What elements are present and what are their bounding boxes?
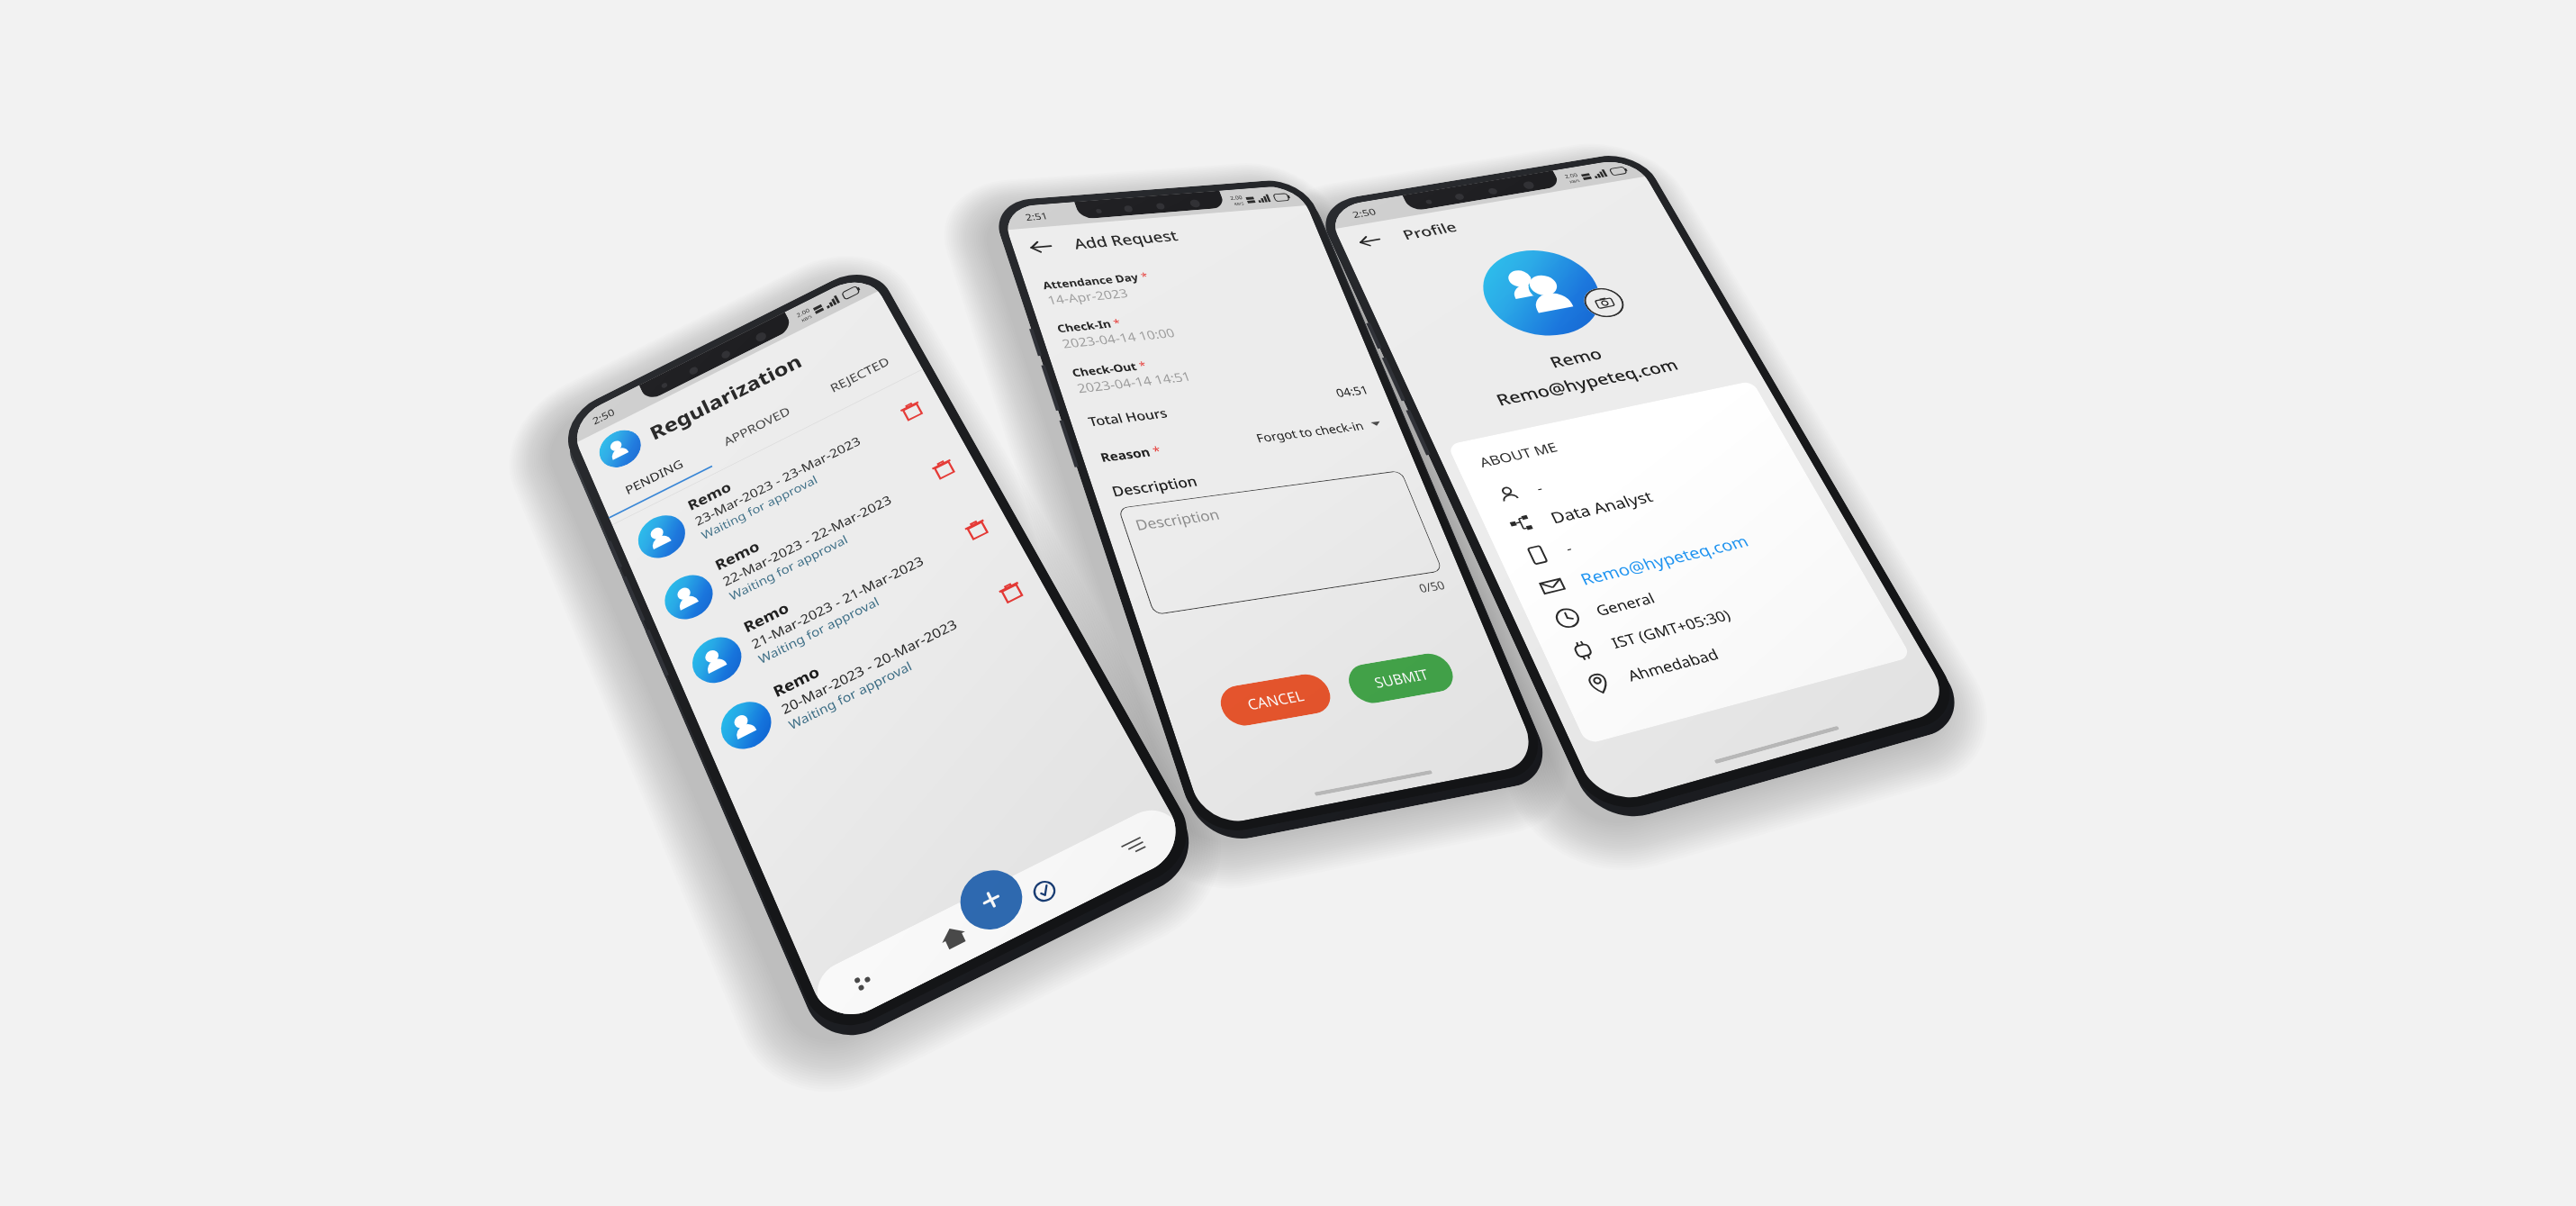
staticText: REJECTED: [827, 353, 892, 396]
staticText: KB/S: [1233, 201, 1245, 207]
button[interactable]: Change photo: [1578, 285, 1630, 320]
staticText: Remo: [1405, 317, 1739, 401]
button[interactable]: Home: [934, 917, 973, 956]
button[interactable]: Add: [951, 860, 1033, 940]
staticText: Check-In: [1055, 316, 1113, 336]
staticText: Waiting for approval: [786, 657, 915, 733]
staticText: Total Hours: [1086, 404, 1170, 430]
button[interactable]: Delete: [926, 453, 962, 485]
staticText: ABOUT ME: [1476, 438, 1561, 471]
staticText: Remo@hypeteq.com: [1416, 340, 1752, 426]
staticText: Profile: [1399, 218, 1460, 244]
staticText: Remo: [770, 661, 823, 702]
staticText: PENDING: [623, 455, 686, 498]
staticText: 23-Mar-2023 - 23-Mar-2023: [692, 433, 863, 529]
button[interactable]: SUBMIT: [1343, 651, 1459, 706]
staticText: Remo: [740, 597, 792, 637]
staticText: Check-Out: [1070, 359, 1139, 380]
staticText: Waiting for approval: [756, 593, 883, 667]
button[interactable]: General: [1547, 534, 1858, 637]
staticText: *: [1108, 315, 1123, 330]
button[interactable]: -: [1489, 420, 1791, 512]
button[interactable]: Attendance Day: [1022, 249, 1340, 313]
button[interactable]: Remo: [693, 547, 1058, 779]
staticText: 04:51: [1333, 382, 1371, 400]
staticText: Ahmedabad: [1624, 644, 1722, 685]
staticText: 2023-04-14 14:51: [1075, 368, 1193, 396]
staticText: Remo: [712, 536, 763, 575]
staticText: KB/S: [801, 314, 813, 324]
staticText: 2:50: [590, 405, 616, 427]
staticText: 2023-04-14 10:00: [1060, 324, 1177, 351]
button[interactable]: Reason: [1080, 410, 1402, 471]
staticText: -: [1562, 539, 1575, 557]
staticText: KB/S: [1569, 178, 1581, 185]
button[interactable]: Back: [1025, 235, 1058, 258]
staticText: General: [1592, 588, 1658, 620]
staticText: Description: [1109, 472, 1200, 501]
staticText: *: [1134, 358, 1149, 373]
button[interactable]: Remo: [638, 426, 988, 647]
staticText: IST (GMT+05:30): [1608, 605, 1734, 652]
staticText: 2:51: [1023, 209, 1049, 223]
button[interactable]: Data Analyst: [1503, 448, 1807, 542]
staticText: *: [1147, 442, 1164, 459]
button[interactable]: Description: [1118, 470, 1443, 615]
button[interactable]: Check-In: [1037, 290, 1357, 357]
staticText: 2.00: [1229, 194, 1244, 202]
staticText: 2.00: [795, 307, 811, 320]
staticText: 21-Mar-2023 - 21-Mar-2023: [748, 552, 927, 653]
staticText: Remo: [685, 477, 734, 515]
button[interactable]: [594, 423, 647, 474]
staticText: Attendance Day: [1040, 270, 1141, 292]
button[interactable]: REJECTED: [801, 335, 923, 421]
staticText: 22-Mar-2023 - 22-Mar-2023: [720, 491, 895, 590]
staticText: Remo@hypeteq.com: [1577, 531, 1752, 590]
staticText: 2:50: [1350, 205, 1378, 220]
staticText: Regularization: [645, 348, 806, 445]
staticText: APPROVED: [721, 403, 793, 449]
button[interactable]: IST (GMT+05:30): [1563, 564, 1876, 670]
staticText: SUBMIT: [1371, 665, 1431, 692]
staticText: CANCEL: [1244, 686, 1307, 714]
button[interactable]: Menu: [1115, 829, 1152, 864]
button[interactable]: Delete: [993, 575, 1030, 609]
button[interactable]: -: [1518, 476, 1824, 573]
staticText: Add Request: [1071, 226, 1180, 254]
staticText: Data Analyst: [1547, 486, 1657, 528]
button[interactable]: CANCEL: [1215, 671, 1336, 729]
button[interactable]: Check: [1026, 873, 1063, 909]
button[interactable]: Delete: [959, 513, 995, 546]
button[interactable]: PENDING: [596, 438, 715, 525]
button[interactable]: Remo: [612, 369, 955, 585]
button[interactable]: Check-Out: [1051, 331, 1375, 402]
button[interactable]: Remo@hypeteq.com: [1532, 505, 1841, 605]
button[interactable]: Delete: [895, 396, 929, 427]
staticText: -: [1533, 480, 1546, 496]
staticText: Description: [1133, 504, 1223, 535]
button[interactable]: Ahmedabad: [1578, 594, 1893, 704]
staticText: Waiting for approval: [727, 531, 851, 604]
staticText: *: [1136, 269, 1150, 283]
staticText: 14-Apr-2023: [1045, 285, 1131, 308]
staticText: Forgot to check-in: [1254, 418, 1366, 446]
button[interactable]: APPROVED: [699, 386, 819, 473]
staticText: Waiting for approval: [699, 472, 821, 543]
button[interactable]: Apps: [846, 964, 881, 1000]
staticText: 20-Mar-2023 - 20-Mar-2023: [778, 615, 960, 718]
staticText: 2.00: [1563, 172, 1579, 180]
button[interactable]: Back: [1353, 230, 1387, 252]
button[interactable]: Remo: [665, 485, 1022, 712]
staticText: 0/50: [1416, 577, 1448, 596]
staticText: Reason: [1098, 444, 1152, 465]
